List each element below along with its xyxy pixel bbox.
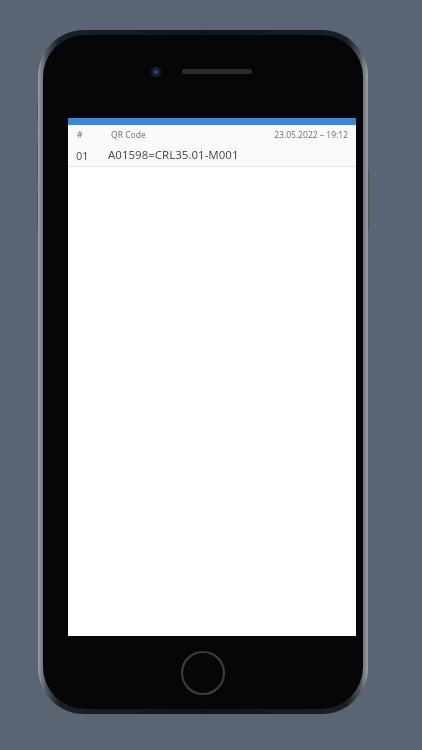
staticText: A01598=CRL35.01-M001 [108, 147, 239, 163]
button[interactable]: 01 [68, 144, 356, 166]
staticText: 01 [76, 148, 89, 163]
staticText: # [77, 129, 83, 141]
staticText: QR Code [111, 129, 146, 141]
staticText: 23.05.2022 – 19:12 [274, 129, 348, 141]
button[interactable]: Home [180, 650, 226, 696]
